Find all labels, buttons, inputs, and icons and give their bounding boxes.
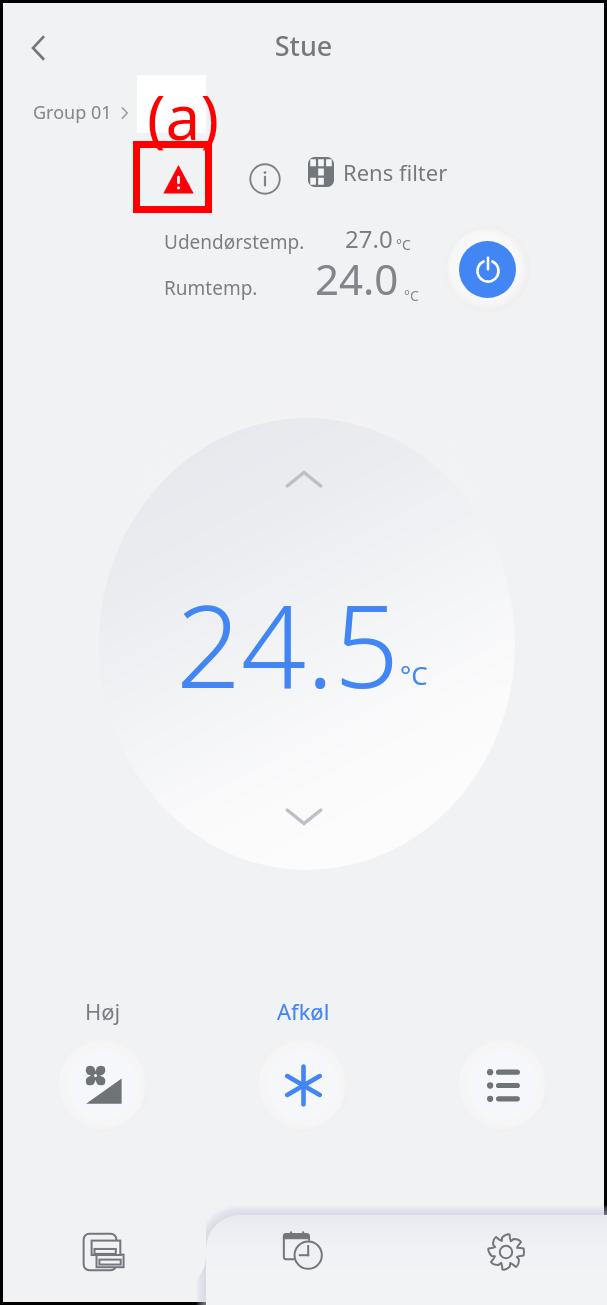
button[interactable]: Decrease temperature [273,783,335,845]
staticText: 24.0 [315,250,399,307]
staticText: Group 01 [33,100,112,125]
button[interactable]: Høj [68,1050,138,1120]
button[interactable]: More options [468,1050,538,1120]
button[interactable]: Back [14,23,64,73]
staticText: Stue [3,27,604,64]
staticText: 24.5 [176,566,400,721]
button[interactable]: Warning [154,155,202,203]
staticText: Høj [85,996,121,1026]
button[interactable]: Afkøl [268,1050,338,1120]
staticText: °C [400,657,428,692]
button[interactable]: Increase temperature [273,451,335,513]
button[interactable]: Group 01 [33,100,130,125]
staticText: Udendørstemp. [164,229,305,255]
button[interactable]: Schedule [269,1212,339,1290]
button[interactable]: Units [3,1197,206,1290]
button[interactable]: Info [243,157,287,201]
staticText: °C [404,286,419,305]
button[interactable]: Rens filter [308,150,448,194]
button[interactable]: Power [459,241,516,298]
staticText: °C [396,235,411,254]
button[interactable]: Settings [471,1213,541,1291]
staticText: Afkøl [277,996,330,1026]
staticText: (a) [147,74,219,158]
staticText: Rumtemp. [164,275,258,301]
staticText: 27.0 [345,222,393,255]
staticText: Rens filter [343,157,448,187]
